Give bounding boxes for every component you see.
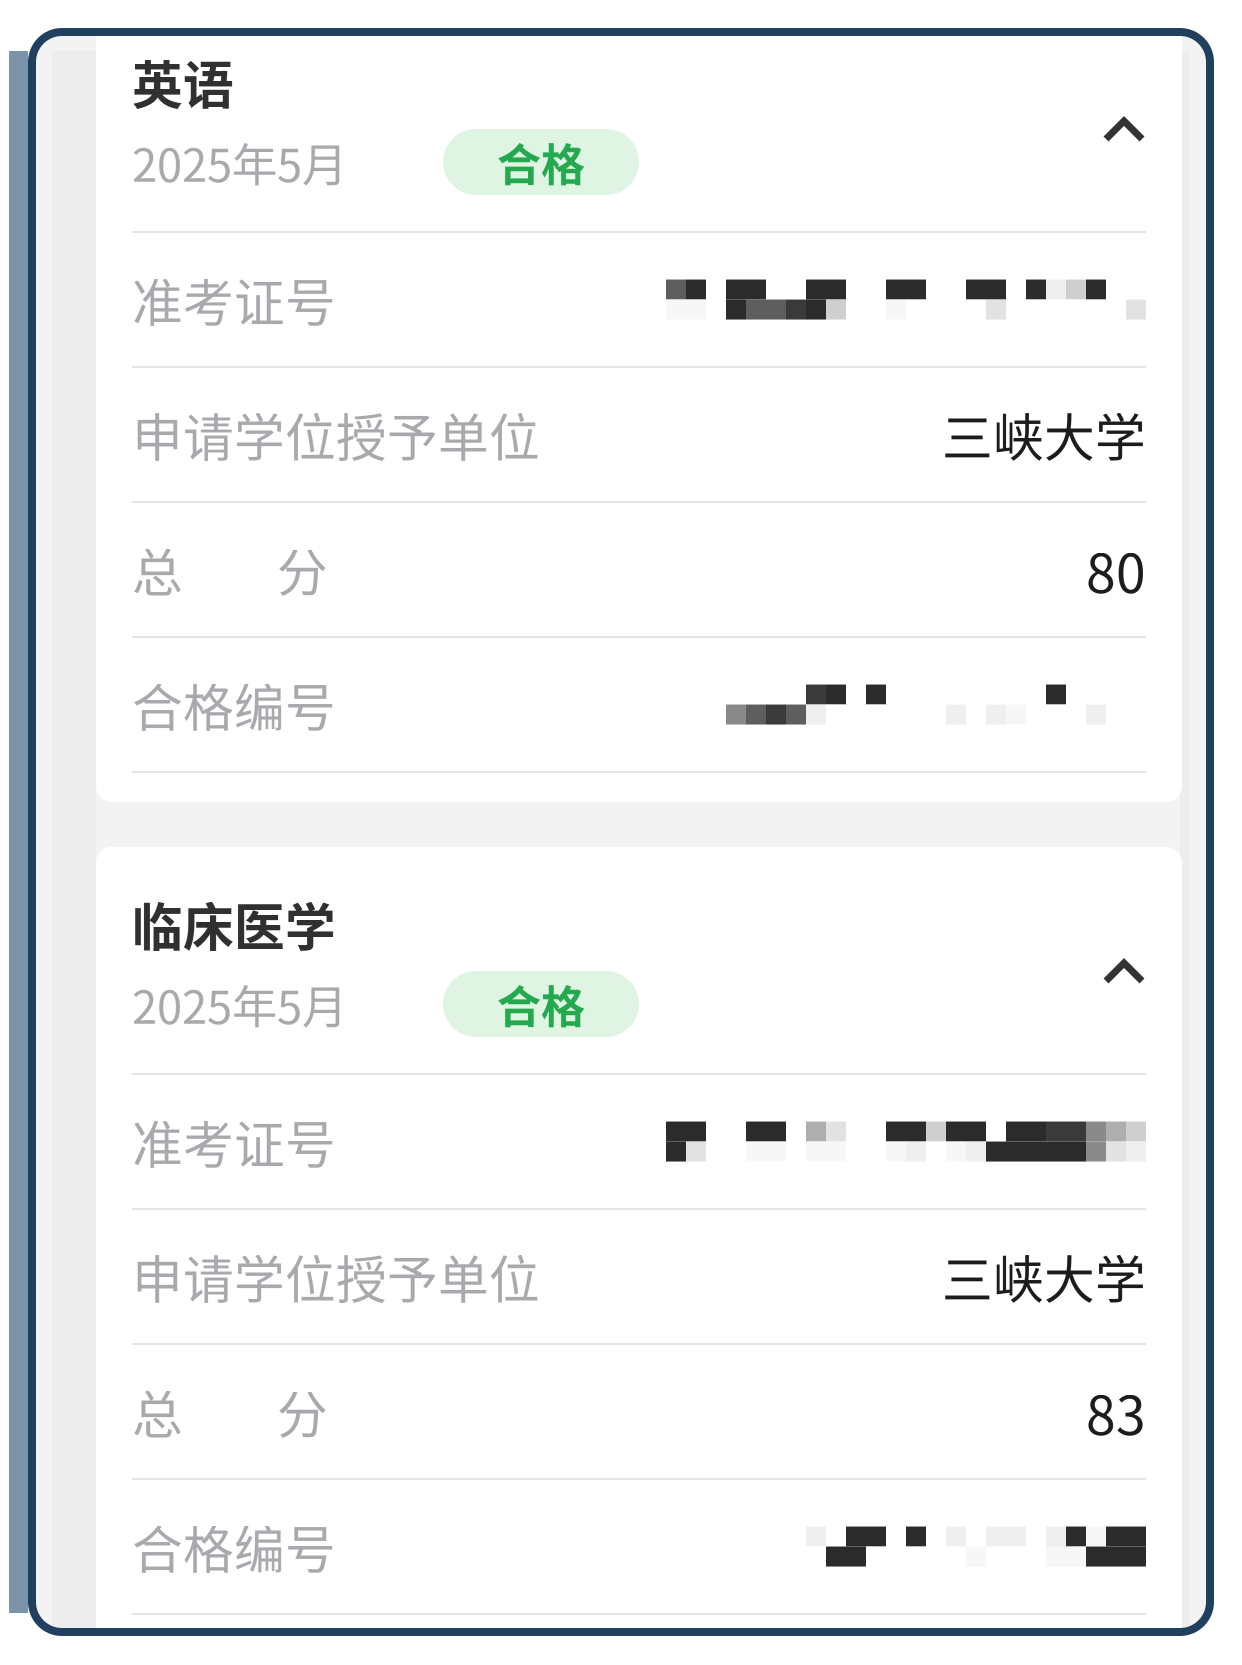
staticText: 总 [132,1375,183,1448]
staticText: 临床医学 [132,887,336,961]
staticText: 合格编号 [132,668,336,741]
staticText: 英语 [132,45,234,119]
staticText: 分 [277,1375,328,1448]
staticText: 三峡大学 [942,1240,1146,1313]
staticText: 合格 [497,972,585,1036]
staticText: 申请学位授予单位 [132,398,540,471]
staticText: 申请学位授予单位 [132,1240,540,1313]
staticText: 2025年5月 [132,971,347,1037]
button[interactable]: Collapse 临床医学 [1102,956,1146,988]
staticText: 83 [1086,1373,1146,1450]
staticText: 分 [277,533,328,606]
staticText: 准考证号 [132,1105,336,1178]
staticText: 准考证号 [132,263,336,336]
staticText: 总 [132,533,183,606]
staticText: 三峡大学 [942,398,1146,471]
staticText: 合格 [497,130,585,194]
button[interactable]: Collapse 英语 [1102,114,1146,146]
staticText: 合格编号 [132,1510,336,1583]
staticText: 80 [1086,531,1146,608]
staticText: 2025年5月 [132,129,347,195]
